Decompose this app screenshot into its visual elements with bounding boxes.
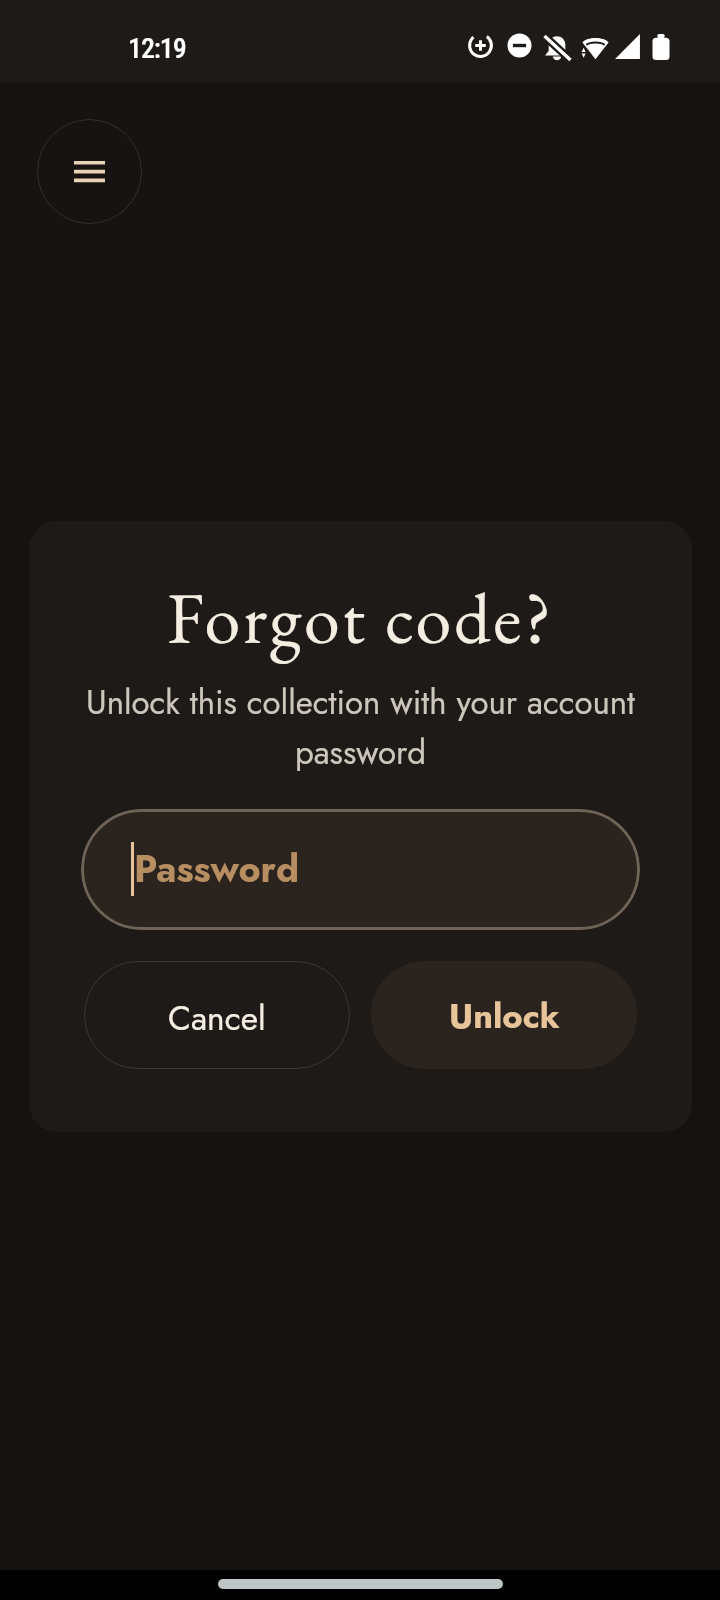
staticText: Cancel bbox=[168, 994, 266, 1042]
staticText: Password bbox=[134, 842, 300, 896]
staticText: Unlock this collection with your account… bbox=[55, 679, 666, 776]
button[interactable]: Cancel bbox=[84, 961, 350, 1069]
button[interactable]: Unlock bbox=[371, 961, 637, 1069]
staticText: Forgot code? bbox=[29, 570, 692, 664]
staticText: 12:19 bbox=[128, 32, 186, 65]
button[interactable]: Open navigation menu bbox=[37, 119, 142, 224]
button[interactable]: Password field bbox=[81, 809, 640, 930]
staticText: Unlock bbox=[449, 991, 560, 1041]
